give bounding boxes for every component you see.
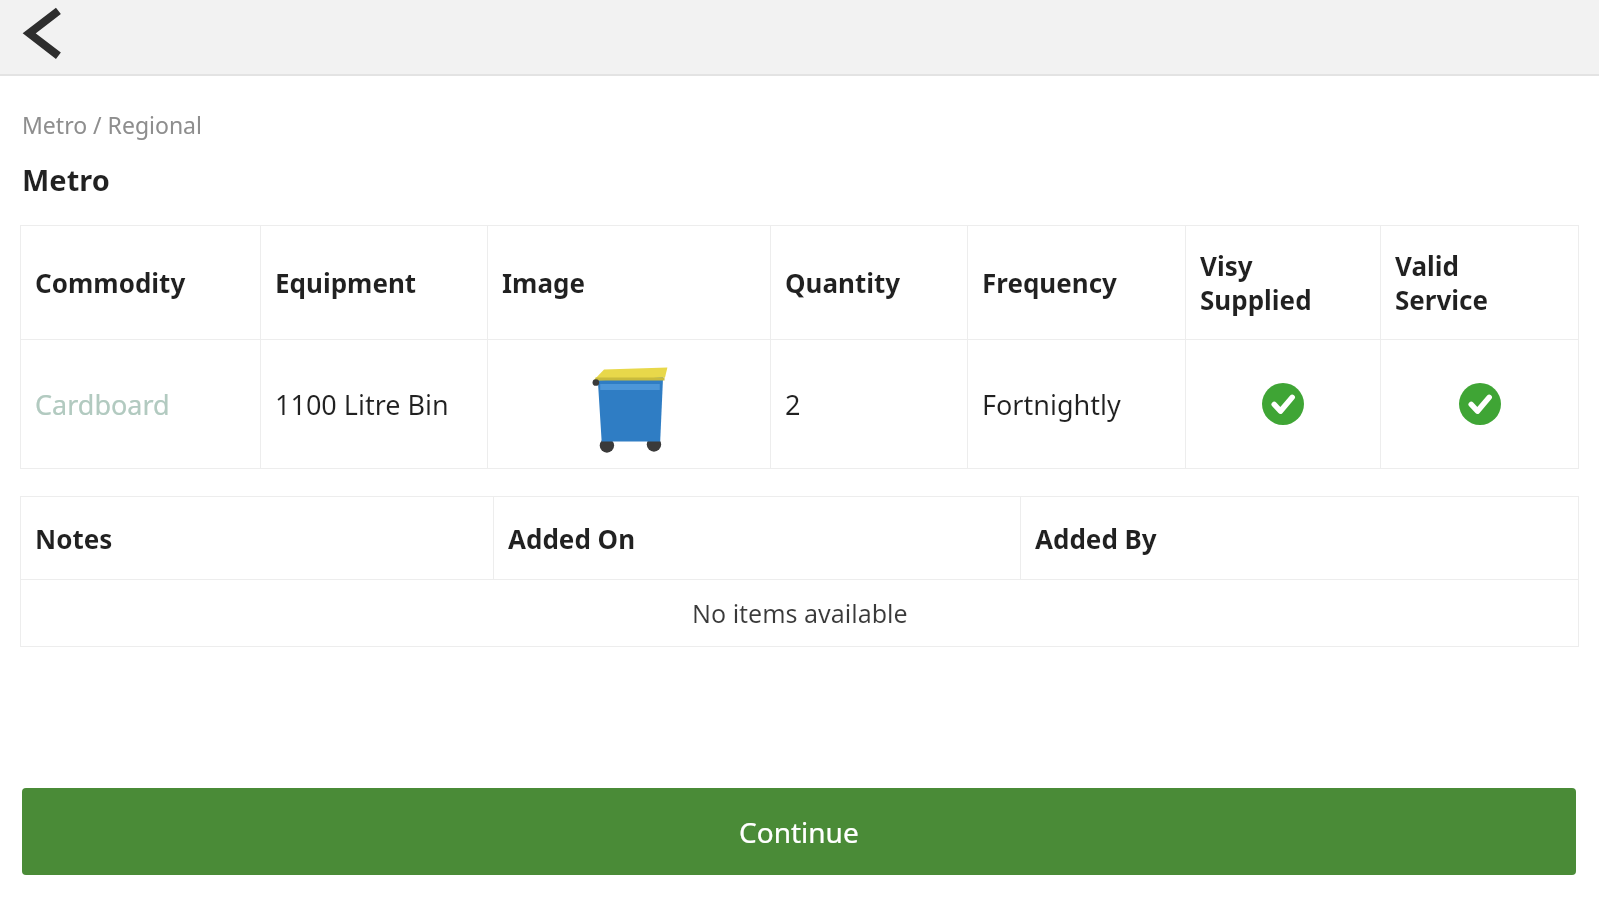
staticText: Frequency <box>982 265 1117 300</box>
button[interactable]: Continue <box>22 788 1576 875</box>
staticText: Added On <box>508 521 636 556</box>
staticText: Continue <box>739 813 859 851</box>
staticText: 1100 Litre Bin <box>275 386 449 423</box>
staticText: Visy Supplied <box>1200 248 1312 317</box>
staticText: No items available <box>692 596 908 630</box>
staticText: Metro / Regional <box>22 109 202 140</box>
staticText: Commodity <box>35 265 186 300</box>
staticText: 2 <box>785 386 801 423</box>
button[interactable]: Back <box>10 0 72 74</box>
staticText: Metro <box>22 160 110 199</box>
staticText: Fortnightly <box>982 386 1121 423</box>
staticText: Equipment <box>275 265 417 300</box>
button[interactable]: Cardboard <box>21 340 260 468</box>
staticText: Quantity <box>785 265 901 300</box>
staticText: Image <box>502 265 585 300</box>
staticText: Added By <box>1035 521 1157 556</box>
staticText: Cardboard <box>35 386 170 423</box>
staticText: Notes <box>35 521 113 556</box>
staticText: Valid Service <box>1395 248 1489 317</box>
